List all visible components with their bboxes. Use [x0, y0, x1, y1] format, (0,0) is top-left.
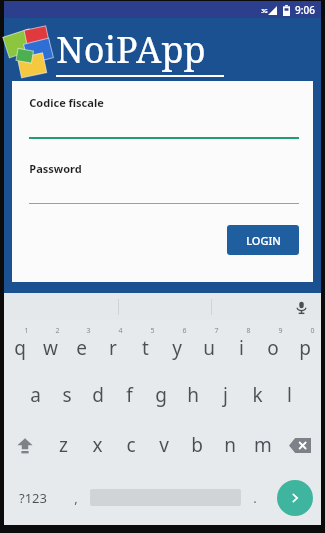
button[interactable]: Voice input	[291, 297, 311, 317]
staticText: t	[142, 335, 149, 361]
staticText: LOGIN	[246, 233, 281, 248]
button[interactable]: b	[180, 420, 213, 470]
staticText: f	[126, 382, 133, 408]
button[interactable]: Enter	[277, 480, 313, 516]
staticText: n	[224, 432, 236, 458]
staticText: 4	[118, 326, 123, 336]
button[interactable]: n	[213, 420, 246, 470]
button[interactable]: ,	[62, 470, 90, 525]
staticText: ?123	[19, 489, 47, 507]
staticText: p	[299, 335, 311, 361]
staticText: m	[254, 432, 272, 458]
button[interactable]: x	[80, 420, 114, 470]
button[interactable]: h	[177, 370, 209, 420]
button[interactable]: 8	[225, 320, 257, 370]
button[interactable]: 3	[66, 320, 97, 370]
staticText: j	[223, 382, 228, 408]
button[interactable]: 6	[161, 320, 193, 370]
button[interactable]: c	[114, 420, 147, 470]
staticText: 3G	[261, 8, 268, 15]
staticText: z	[59, 432, 68, 458]
button[interactable]: s	[51, 370, 82, 420]
staticText: Codice fiscale	[29, 95, 104, 110]
staticText: e	[76, 335, 87, 361]
staticText: b	[191, 432, 203, 458]
staticText: l	[287, 382, 292, 408]
staticText: i	[239, 335, 244, 361]
staticText: Password	[29, 161, 82, 176]
staticText: s	[62, 382, 72, 408]
staticText: d	[92, 382, 104, 408]
staticText: ,	[74, 489, 78, 507]
button[interactable]: g	[145, 370, 177, 420]
staticText: 2	[55, 326, 60, 336]
button[interactable]: 5	[129, 320, 161, 370]
staticText: 5	[150, 326, 155, 336]
button[interactable]: v	[147, 420, 180, 470]
button[interactable]: z	[46, 420, 80, 470]
staticText: 9	[278, 326, 283, 336]
button[interactable]: k	[241, 370, 273, 420]
staticText: 3	[86, 326, 91, 336]
staticText: v	[159, 432, 169, 458]
button[interactable]: Shift	[4, 420, 46, 470]
button[interactable]: j	[209, 370, 241, 420]
staticText: o	[267, 335, 279, 361]
staticText: g	[155, 382, 167, 408]
button[interactable]: 4	[97, 320, 129, 370]
staticText: 7	[214, 326, 219, 336]
button[interactable]: 7	[193, 320, 225, 370]
staticText: a	[30, 382, 41, 408]
staticText: x	[92, 432, 103, 458]
button[interactable]: f	[113, 370, 145, 420]
button[interactable]	[90, 485, 241, 510]
staticText: 8	[246, 326, 251, 336]
staticText: NoiPApp	[56, 25, 206, 74]
staticText: c	[126, 432, 136, 458]
button[interactable]: m	[246, 420, 279, 470]
staticText: .	[253, 489, 257, 507]
staticText: 9:06	[295, 3, 315, 17]
button[interactable]: d	[82, 370, 113, 420]
staticText: w	[43, 335, 58, 361]
staticText: 6	[182, 326, 187, 336]
staticText: u	[203, 335, 215, 361]
staticText: k	[252, 382, 263, 408]
button[interactable]: ?123	[4, 470, 62, 525]
staticText: q	[14, 335, 26, 361]
staticText: y	[172, 335, 182, 361]
staticText: 1	[24, 326, 29, 336]
button[interactable]: a	[20, 370, 51, 420]
button[interactable]: 2	[35, 320, 66, 370]
button[interactable]: LOGIN	[227, 225, 299, 255]
button[interactable]: .	[241, 470, 269, 525]
staticText: 0	[310, 326, 315, 336]
button[interactable]: l	[273, 370, 305, 420]
staticText: h	[187, 382, 199, 408]
button[interactable]: 1	[4, 320, 35, 370]
button[interactable]: 9	[257, 320, 289, 370]
staticText: r	[109, 335, 117, 361]
button[interactable]: Backspace	[279, 420, 321, 470]
button[interactable]: 0	[289, 320, 321, 370]
